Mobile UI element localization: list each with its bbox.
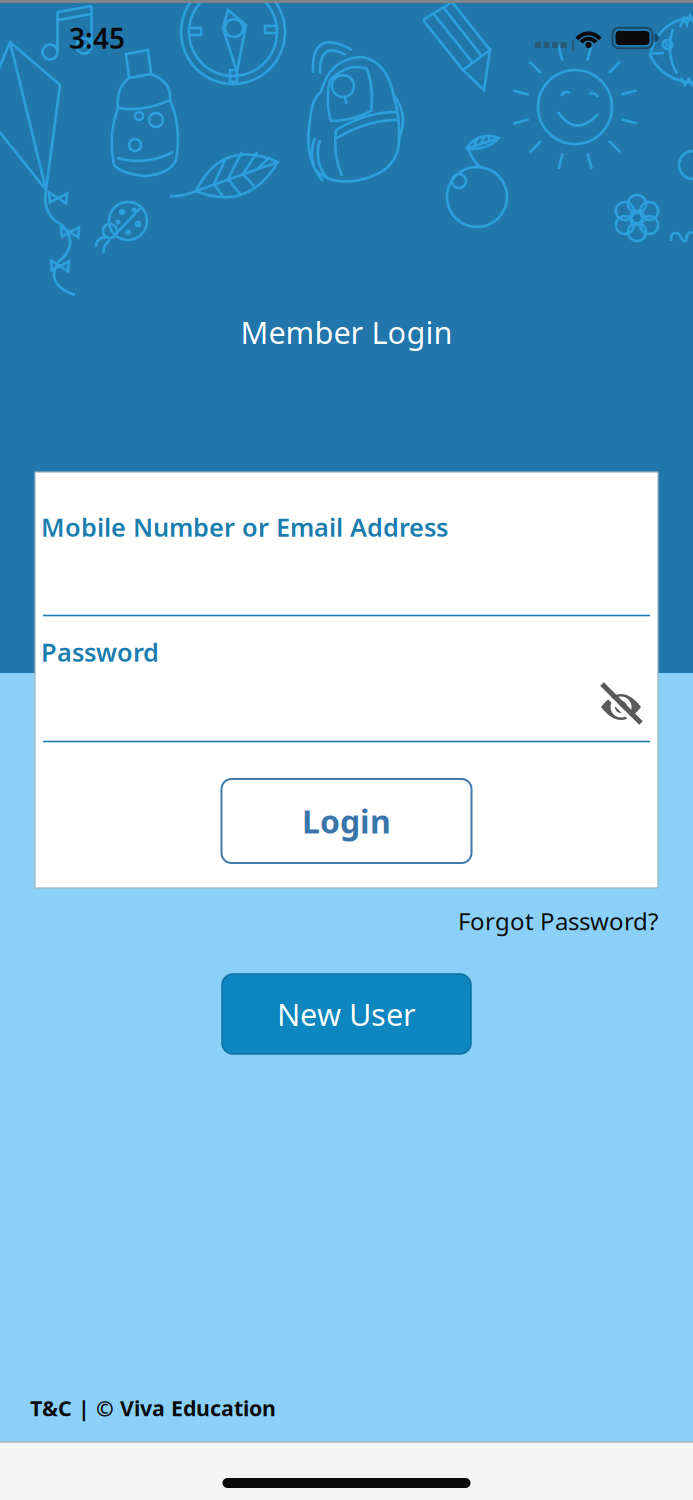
button[interactable]: Forgot Password? bbox=[458, 905, 658, 937]
staticText: T&C | © Viva Education bbox=[30, 1394, 276, 1422]
button[interactable]: T&C | © Viva Education bbox=[30, 1394, 276, 1422]
staticText: Mobile Number or Email Address bbox=[41, 510, 448, 544]
staticText: Forgot Password? bbox=[458, 905, 658, 937]
button[interactable]: New User bbox=[222, 974, 471, 1054]
staticText: Member Login bbox=[240, 312, 452, 352]
button[interactable]: Show password bbox=[597, 682, 645, 730]
staticText: Login bbox=[302, 800, 391, 842]
button[interactable]: Login bbox=[221, 779, 471, 863]
staticText: 3:45 bbox=[69, 19, 125, 57]
staticText: New User bbox=[277, 994, 416, 1034]
staticText: Password bbox=[41, 635, 159, 669]
